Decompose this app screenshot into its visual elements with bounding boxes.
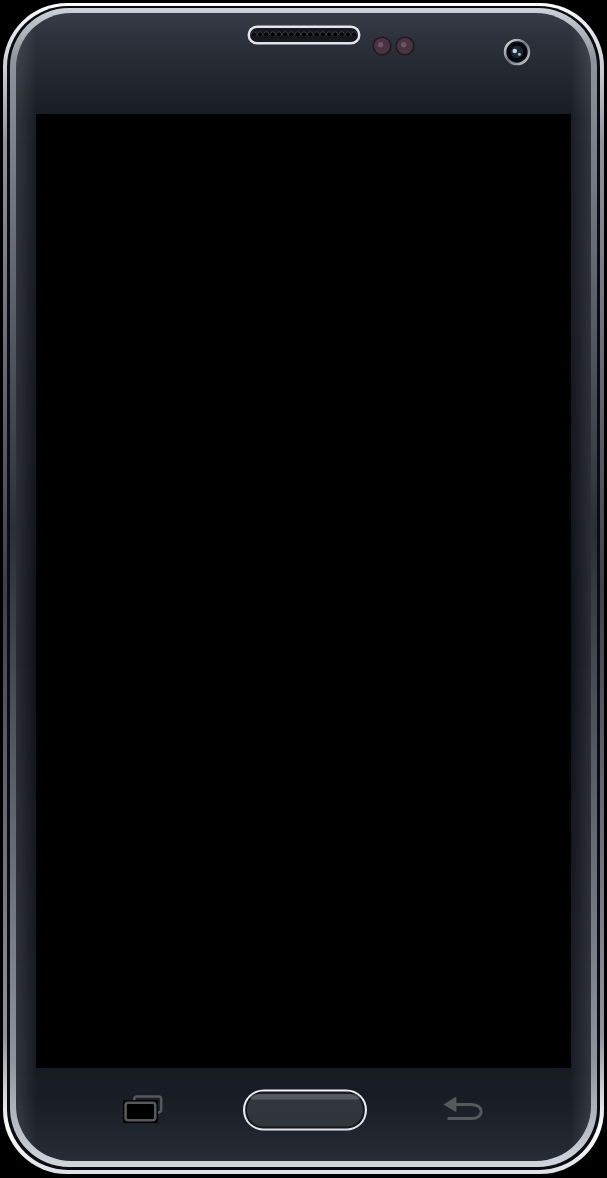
button[interactable]: Back xyxy=(438,1086,492,1130)
button[interactable]: Home xyxy=(243,1088,367,1132)
button[interactable]: Recent apps xyxy=(118,1086,172,1130)
